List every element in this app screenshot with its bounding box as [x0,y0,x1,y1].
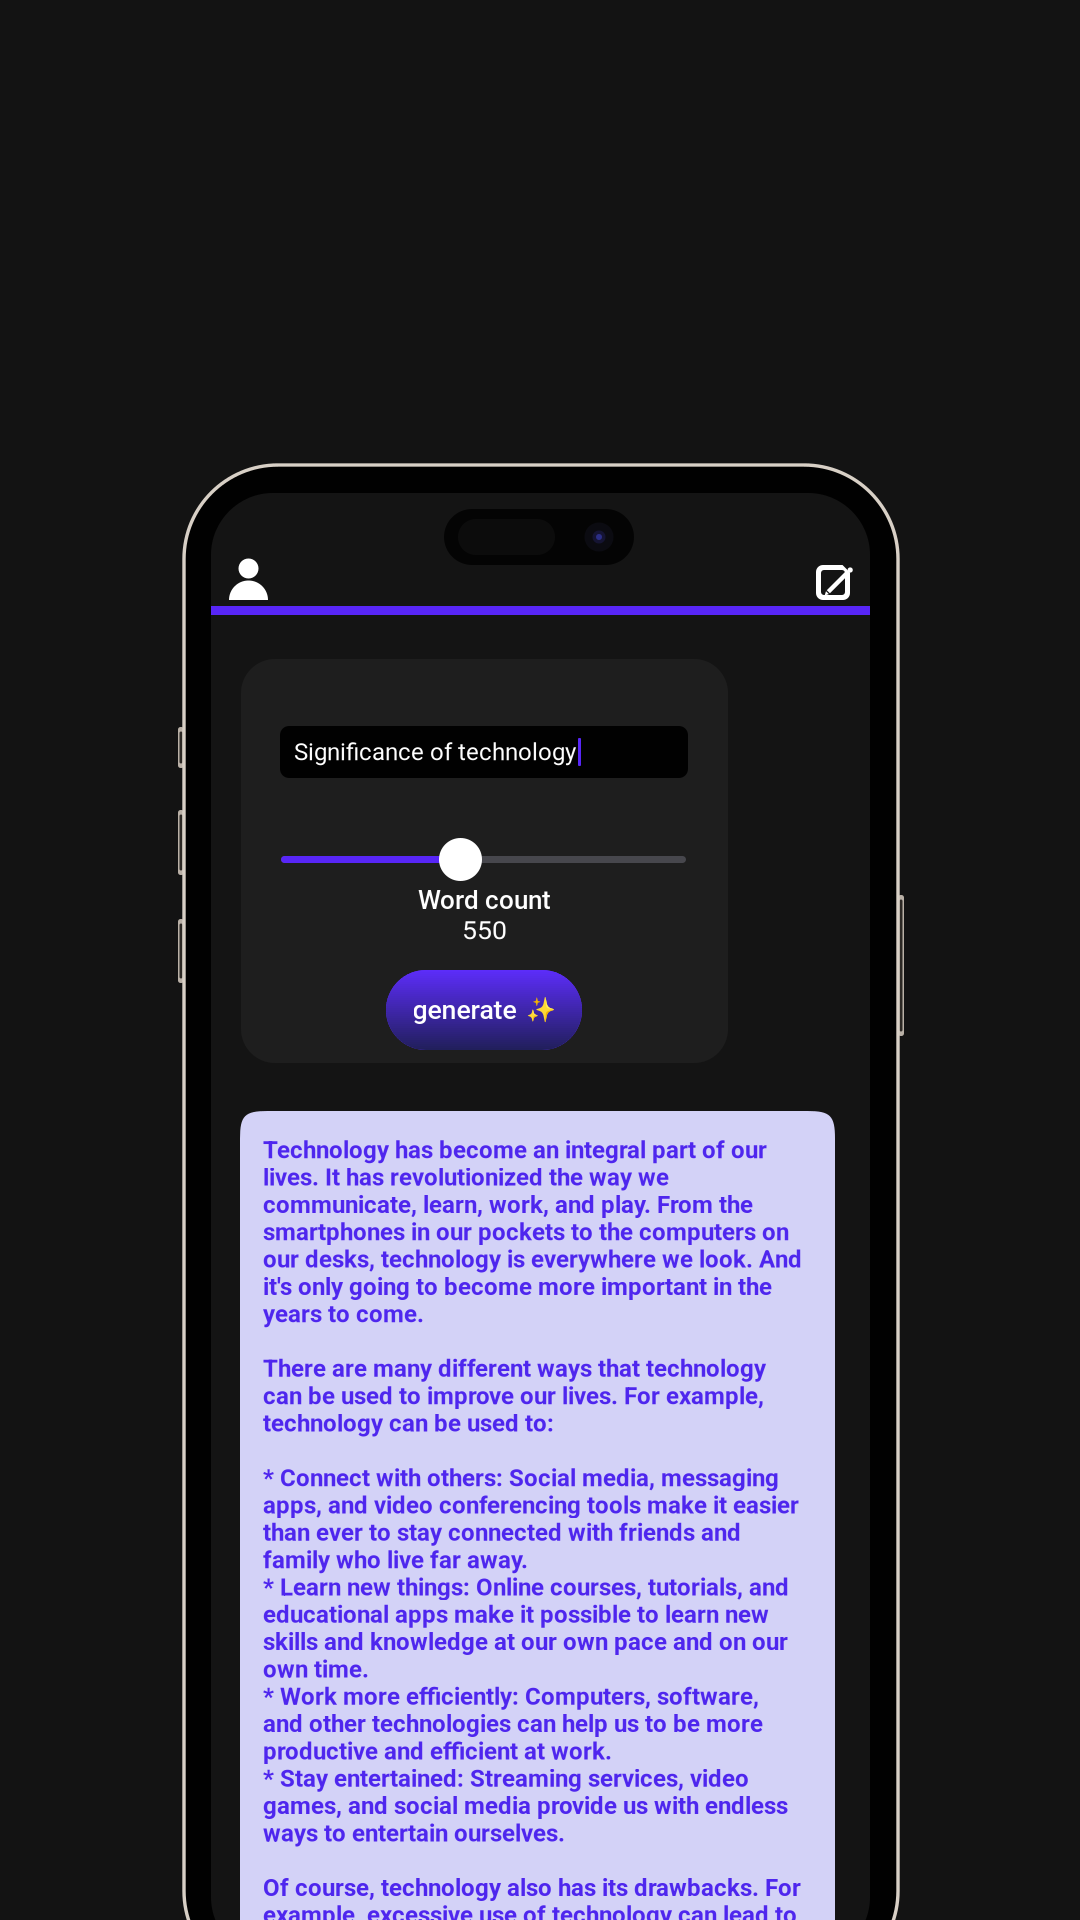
staticText: Word count [418,885,551,915]
button[interactable]: Account [219,548,278,610]
button[interactable]: generate [386,970,582,1050]
staticText: 550 [462,914,507,946]
staticText: ✨ [525,996,555,1024]
staticText: Technology has become an integral part o… [263,1136,802,1920]
staticText: generate [412,994,516,1026]
button[interactable]: Compose [806,555,871,613]
staticText: Significance of technology [294,738,576,766]
